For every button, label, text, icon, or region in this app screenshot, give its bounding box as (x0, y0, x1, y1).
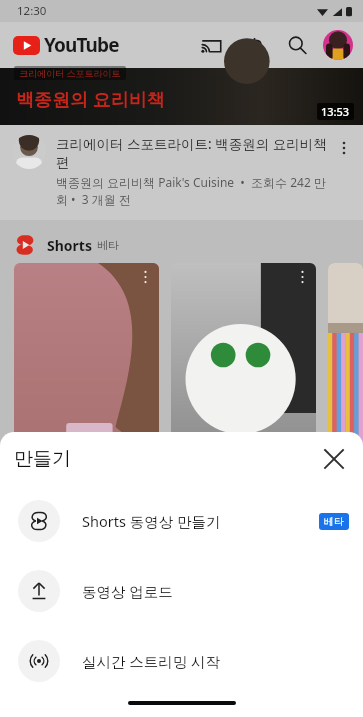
button[interactable]: Cast (196, 30, 226, 60)
button[interactable]: 실시간 스트리밍 시작 (0, 626, 363, 696)
staticText: 백종원의 요리비책 (16, 87, 165, 112)
staticText: 크리에이터 스포트라이트 (19, 67, 121, 79)
button[interactable]: Notifications (239, 30, 269, 60)
staticText: 동영상 업로드 (82, 581, 173, 601)
button[interactable]: More (14, 263, 159, 463)
staticText: 베타 (324, 515, 344, 528)
staticText: 실시간 스트리밍 시작 (82, 651, 221, 671)
staticText: 12:30 (17, 3, 47, 19)
staticText: 만들기 (14, 447, 71, 471)
staticText: 베타 (97, 238, 119, 252)
button[interactable]: More (292, 267, 312, 287)
staticText: Shorts 동영상 만들기 (82, 511, 221, 531)
button[interactable]: 크리에이터 스포트라이트: 백종원의 요리비책 편 (0, 125, 363, 220)
staticText: YouTube (44, 32, 119, 58)
button[interactable] (328, 263, 363, 463)
button[interactable]: Shorts (0, 228, 363, 263)
button[interactable]: YouTube (13, 32, 119, 58)
button[interactable]: Search (282, 30, 312, 60)
button[interactable]: More options (331, 135, 357, 161)
staticText: 13:53 (321, 104, 350, 119)
staticText: 백종원의 요리비책 Paik's Cuisine • 조회수 242 만회 • … (56, 174, 331, 208)
button[interactable]: 크리에이터 스포트라이트 (0, 68, 363, 125)
button[interactable]: More (171, 263, 316, 463)
button[interactable]: Shorts 동영상 만들기 (0, 486, 363, 556)
staticText: Shorts (47, 236, 92, 255)
button[interactable]: Account (323, 30, 353, 60)
staticText: 크리에이터 스포트라이트: 백종원의 요리비책 편 (56, 135, 331, 171)
button[interactable]: Close (311, 436, 357, 482)
button[interactable]: 동영상 업로드 (0, 556, 363, 626)
button[interactable]: More (135, 267, 155, 287)
